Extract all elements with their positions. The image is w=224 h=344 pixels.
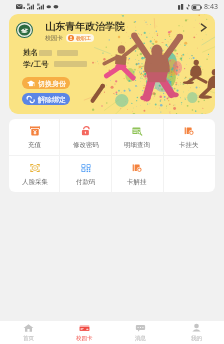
staticText: 校园卡 — [45, 34, 63, 42]
button[interactable]: 修改密码 — [60, 119, 111, 155]
button[interactable]: 人脸采集 — [9, 155, 60, 192]
staticText: 山东青年政治学院 — [45, 20, 125, 33]
staticText: 学/工号 — [23, 59, 49, 69]
staticText: 姓名 — [23, 48, 38, 57]
staticText: 卡挂失 — [179, 141, 199, 149]
button[interactable]: 首页 — [0, 321, 56, 344]
button[interactable]: 充值 — [9, 119, 60, 155]
staticText: 首页 — [23, 335, 34, 342]
other: Card details — [200, 23, 207, 32]
staticText: 付款码 — [76, 178, 96, 186]
staticText: 修改密码 — [73, 141, 99, 149]
button[interactable]: 付款码 — [60, 155, 111, 192]
staticText: 切换身份 — [38, 79, 66, 88]
staticText: 校园卡 — [76, 335, 93, 342]
staticText: 卡解挂 — [127, 178, 147, 186]
staticText: 8:43 — [204, 2, 218, 12]
button[interactable]: 校园卡 — [56, 321, 112, 344]
button[interactable]: 卡解挂 — [111, 155, 163, 192]
button[interactable]: 卡挂失 — [163, 119, 215, 155]
button[interactable]: 我的 — [168, 321, 224, 344]
staticText: 消息 — [135, 335, 146, 342]
button[interactable]: 消息 — [112, 321, 168, 344]
button[interactable]: 解除绑定 — [22, 93, 70, 105]
staticText: 教职工 — [76, 35, 91, 41]
staticText: 解除绑定 — [38, 95, 66, 104]
button[interactable]: 明细查询 — [111, 119, 163, 155]
button[interactable]: 切换身份 — [22, 77, 70, 89]
staticText: 人脸采集 — [22, 178, 48, 186]
staticText: 充值 — [28, 141, 41, 149]
staticText: 明细查询 — [124, 141, 150, 149]
staticText: 我的 — [191, 335, 202, 342]
button[interactable]: Card details — [9, 14, 215, 114]
